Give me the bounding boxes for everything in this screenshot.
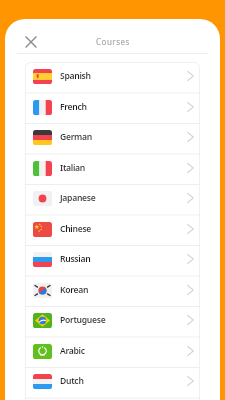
button[interactable]: Spanish — [25, 62, 200, 93]
button[interactable]: Italian — [25, 154, 200, 185]
button[interactable]: Dutch — [25, 367, 200, 398]
staticText: Dutch — [60, 375, 84, 387]
staticText: French — [60, 101, 87, 113]
button[interactable]: Swedish — [25, 398, 200, 400]
staticText: German — [60, 131, 92, 143]
staticText: Chinese — [60, 223, 92, 235]
button[interactable]: Russian — [25, 245, 200, 276]
button[interactable]: Japanese — [25, 184, 200, 215]
staticText: Japanese — [60, 192, 96, 204]
button[interactable]: Portuguese — [25, 306, 200, 337]
staticText: Spanish — [60, 70, 91, 82]
staticText: Courses — [96, 36, 130, 47]
button[interactable]: Arabic — [25, 337, 200, 368]
button[interactable]: German — [25, 123, 200, 154]
button[interactable]: Korean — [25, 276, 200, 307]
button[interactable]: Chinese — [25, 215, 200, 246]
staticText: Arabic — [60, 345, 85, 357]
staticText: Korean — [60, 284, 89, 296]
staticText: Portuguese — [60, 314, 106, 326]
staticText: Russian — [60, 253, 91, 265]
button[interactable]: French — [25, 93, 200, 124]
button[interactable]: Close — [21, 32, 41, 52]
staticText: Italian — [60, 162, 85, 174]
